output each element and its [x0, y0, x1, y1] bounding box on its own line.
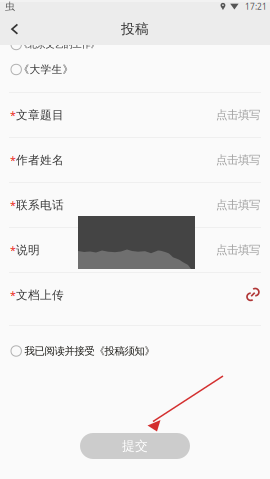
- staticText: 点击填写: [216, 198, 260, 212]
- button[interactable]: 我已阅读并接受《投稿须知》: [0, 326, 270, 376]
- staticText: *: [10, 198, 16, 212]
- staticText: 虫: [5, 0, 15, 13]
- staticText: 文档上传: [16, 288, 64, 302]
- staticText: 联系电话: [16, 198, 64, 212]
- button[interactable]: 《大学生》: [0, 57, 270, 82]
- staticText: 作者姓名: [16, 153, 64, 167]
- staticText: *: [10, 288, 16, 302]
- staticText: 点击填写: [216, 153, 260, 167]
- staticText: *: [10, 153, 16, 167]
- staticText: 《大学生》: [18, 63, 73, 76]
- staticText: 我已阅读并接受《投稿须知》: [24, 345, 154, 357]
- staticText: 文章题目: [16, 108, 64, 122]
- button[interactable]: *: [0, 273, 270, 317]
- staticText: 点击填写: [216, 108, 260, 122]
- button[interactable]: 提交: [80, 433, 190, 459]
- button[interactable]: 《北京文艺的工作》: [0, 32, 270, 57]
- staticText: 说明: [16, 243, 40, 257]
- staticText: *: [10, 108, 16, 122]
- staticText: 17:21: [245, 1, 267, 12]
- staticText: 《北京文艺的工作》: [18, 39, 99, 50]
- button[interactable]: 返回: [0, 13, 27, 45]
- staticText: 提交: [122, 438, 148, 454]
- staticText: 投稿: [121, 20, 149, 38]
- staticText: 点击填写: [216, 243, 260, 257]
- button[interactable]: *: [0, 138, 270, 182]
- button[interactable]: *: [0, 183, 270, 227]
- button[interactable]: *: [0, 93, 270, 137]
- button[interactable]: *: [0, 228, 270, 272]
- staticText: *: [10, 243, 16, 257]
